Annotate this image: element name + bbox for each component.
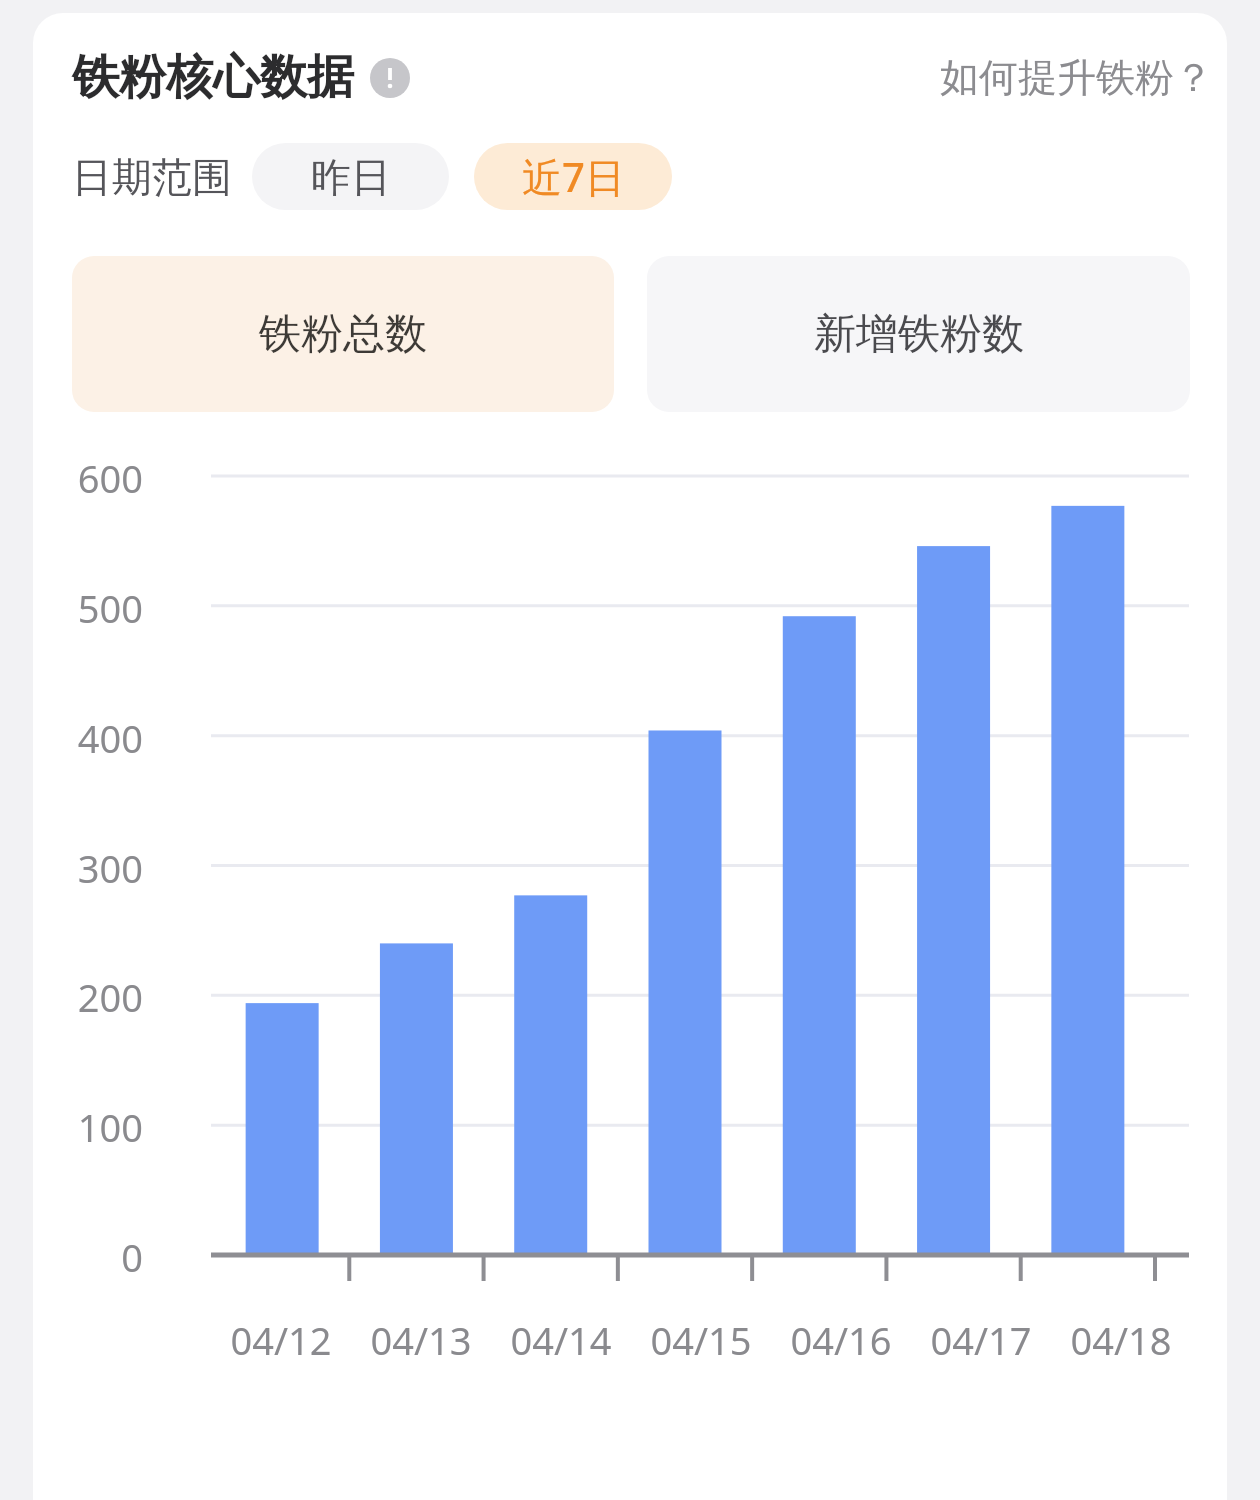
staticText: 铁粉总数 <box>259 308 427 361</box>
staticText: 04/12 <box>230 1314 332 1366</box>
button[interactable]: 新增铁粉数 <box>647 256 1190 412</box>
staticText: 04/14 <box>510 1314 612 1366</box>
staticText: 04/16 <box>790 1314 892 1366</box>
staticText: 04/18 <box>1070 1314 1172 1366</box>
staticText: 04/17 <box>930 1314 1032 1366</box>
staticText: 铁粉核心数据 <box>72 48 354 107</box>
staticText: 新增铁粉数 <box>814 308 1024 361</box>
staticText: 400 <box>77 712 143 764</box>
button[interactable]: 说明 <box>368 56 412 100</box>
button[interactable]: 昨日 <box>252 143 449 210</box>
button[interactable]: 如何提升铁粉？ <box>932 45 1221 110</box>
staticText: 如何提升铁粉？ <box>940 53 1213 102</box>
staticText: 04/15 <box>650 1314 752 1366</box>
staticText: 500 <box>77 582 143 634</box>
staticText: 0 <box>121 1231 143 1283</box>
staticText: 100 <box>77 1101 143 1153</box>
button[interactable]: 铁粉总数 <box>72 256 614 412</box>
staticText: 600 <box>77 452 143 504</box>
staticText: 昨日 <box>311 152 391 202</box>
staticText: 近7日 <box>522 149 625 204</box>
button[interactable]: 近7日 <box>474 143 672 210</box>
staticText: 04/13 <box>370 1314 472 1366</box>
staticText: 200 <box>77 971 143 1023</box>
staticText: 300 <box>77 842 143 894</box>
staticText: 日期范围 <box>72 152 232 202</box>
